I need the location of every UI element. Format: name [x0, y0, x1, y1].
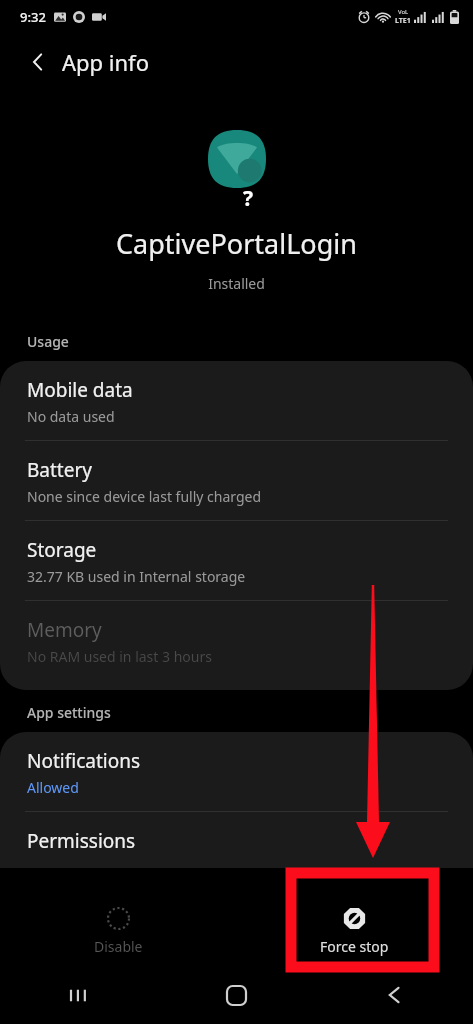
button[interactable]: Storage — [0, 521, 473, 600]
staticText: LTE1 — [395, 16, 411, 26]
button[interactable]: Notifications — [0, 732, 473, 811]
button[interactable]: Battery — [0, 441, 473, 520]
button[interactable]: Home — [157, 966, 315, 1024]
button[interactable]: Disable — [0, 896, 236, 966]
button[interactable]: Back — [14, 38, 62, 86]
staticText: CaptivePortalLogin — [116, 225, 357, 262]
staticText: App info — [62, 47, 149, 77]
staticText: Installed — [208, 274, 265, 293]
staticText: Permissions — [27, 828, 136, 854]
staticText: Battery — [27, 457, 92, 483]
staticText: Notifications — [27, 748, 141, 774]
button[interactable]: Memory — [0, 601, 473, 680]
staticText: Disable — [94, 937, 143, 956]
staticText: Memory — [27, 617, 102, 643]
staticText: 9:32 — [20, 8, 46, 26]
staticText: Storage — [27, 537, 97, 563]
staticText: 32.77 KB used in Internal storage — [27, 567, 246, 586]
staticText: Force stop — [320, 937, 389, 956]
button[interactable]: Permissions — [0, 812, 473, 868]
staticText: No RAM used in last 3 hours — [27, 647, 212, 666]
staticText: No data used — [27, 407, 115, 426]
staticText: Usage — [27, 332, 69, 351]
button[interactable]: Back — [315, 966, 473, 1024]
staticText: Allowed — [27, 778, 79, 797]
staticText: VoL — [398, 8, 409, 16]
staticText: ? — [243, 184, 254, 213]
staticText: Mobile data — [27, 377, 133, 403]
staticText: App settings — [27, 703, 111, 722]
button[interactable]: Force stop — [236, 896, 473, 966]
staticText: None since device last fully charged — [27, 487, 262, 506]
button[interactable]: Recents — [0, 966, 157, 1024]
button[interactable]: Mobile data — [0, 361, 473, 440]
